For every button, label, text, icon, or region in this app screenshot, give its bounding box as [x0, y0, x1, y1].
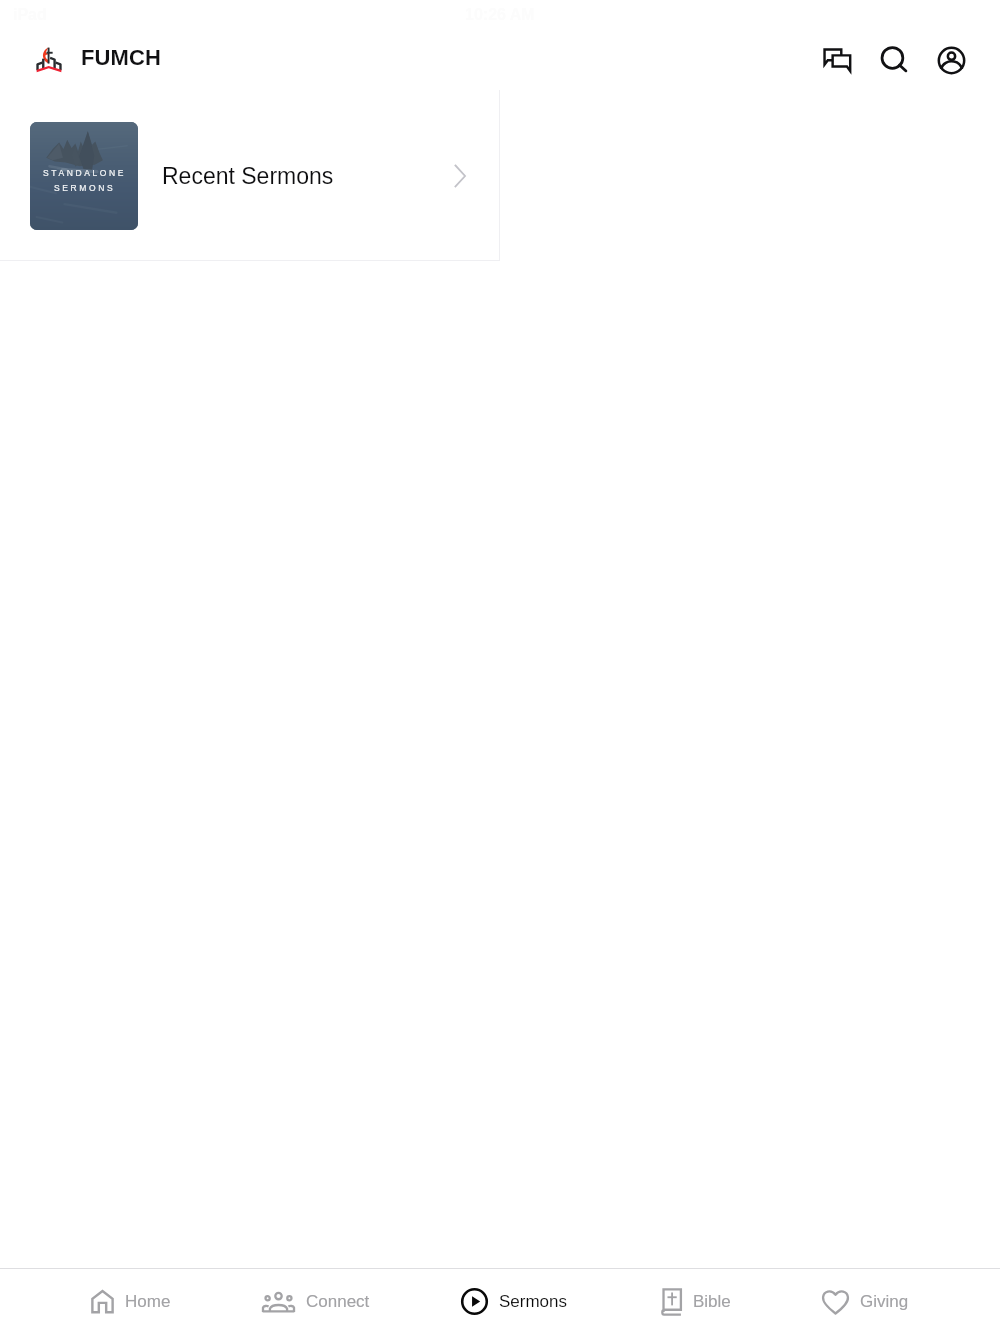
staticText: FUMCH: [81, 45, 161, 70]
staticText: Home: [125, 1292, 171, 1311]
staticText: Connect: [306, 1292, 370, 1311]
button[interactable]: Search: [875, 41, 913, 79]
staticText: Bible: [693, 1292, 731, 1311]
staticText: Recent Sermons: [162, 163, 334, 189]
button[interactable]: Sermons: [461, 1269, 568, 1334]
staticText: SERMONS: [54, 183, 116, 192]
button[interactable]: Messages: [818, 41, 856, 79]
button[interactable]: Giving: [822, 1269, 909, 1334]
staticText: Giving: [860, 1292, 909, 1311]
button[interactable]: Bible: [660, 1269, 731, 1334]
button[interactable]: Account: [932, 41, 970, 79]
button[interactable]: Home: [91, 1269, 171, 1334]
button[interactable]: Connect: [262, 1269, 370, 1334]
button[interactable]: STANDALONE: [0, 90, 500, 261]
staticText: STANDALONE: [43, 168, 126, 177]
staticText: Sermons: [499, 1292, 568, 1311]
